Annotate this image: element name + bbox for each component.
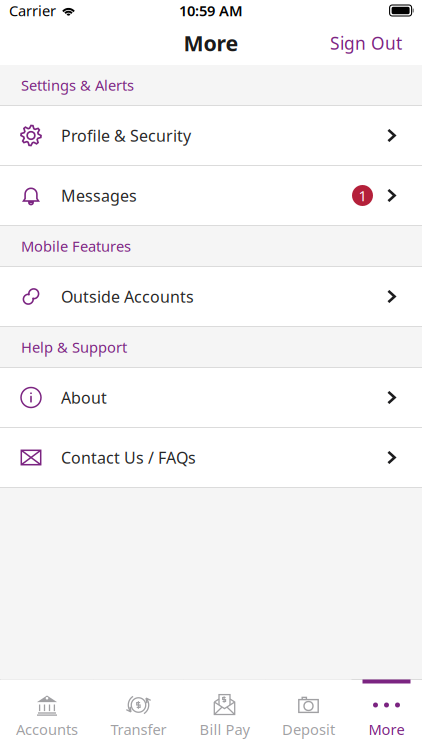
- staticText: Carrier: [9, 1, 56, 20]
- button[interactable]: Contact Us / FAQs: [0, 428, 422, 488]
- staticText: Outside Accounts: [61, 286, 194, 307]
- button[interactable]: About: [0, 368, 422, 428]
- button[interactable]: Sign Out: [324, 25, 408, 60]
- button[interactable]: Accounts: [0, 679, 93, 750]
- button[interactable]: More: [351, 679, 421, 750]
- staticText: Transfer: [110, 719, 166, 739]
- staticText: Sign Out: [330, 31, 402, 54]
- staticText: More: [368, 719, 404, 739]
- staticText: Mobile Features: [21, 236, 131, 256]
- button[interactable]: Outside Accounts: [0, 267, 422, 327]
- button[interactable]: Messages: [0, 166, 422, 226]
- staticText: Contact Us / FAQs: [61, 447, 196, 468]
- staticText: Help & Support: [21, 337, 127, 357]
- button[interactable]: Transfer: [93, 679, 183, 750]
- staticText: Bill Pay: [199, 719, 249, 739]
- staticText: 1: [358, 186, 366, 205]
- button[interactable]: Deposit: [265, 679, 351, 750]
- button[interactable]: Profile & Security: [0, 106, 422, 166]
- staticText: More: [183, 29, 238, 57]
- staticText: Profile & Security: [61, 125, 191, 146]
- staticText: 10:59 AM: [179, 1, 243, 20]
- staticText: Accounts: [16, 719, 78, 739]
- staticText: Messages: [61, 185, 137, 206]
- staticText: Deposit: [282, 719, 335, 739]
- button[interactable]: Bill Pay: [183, 679, 265, 750]
- staticText: About: [61, 387, 107, 408]
- staticText: Settings & Alerts: [21, 75, 134, 95]
